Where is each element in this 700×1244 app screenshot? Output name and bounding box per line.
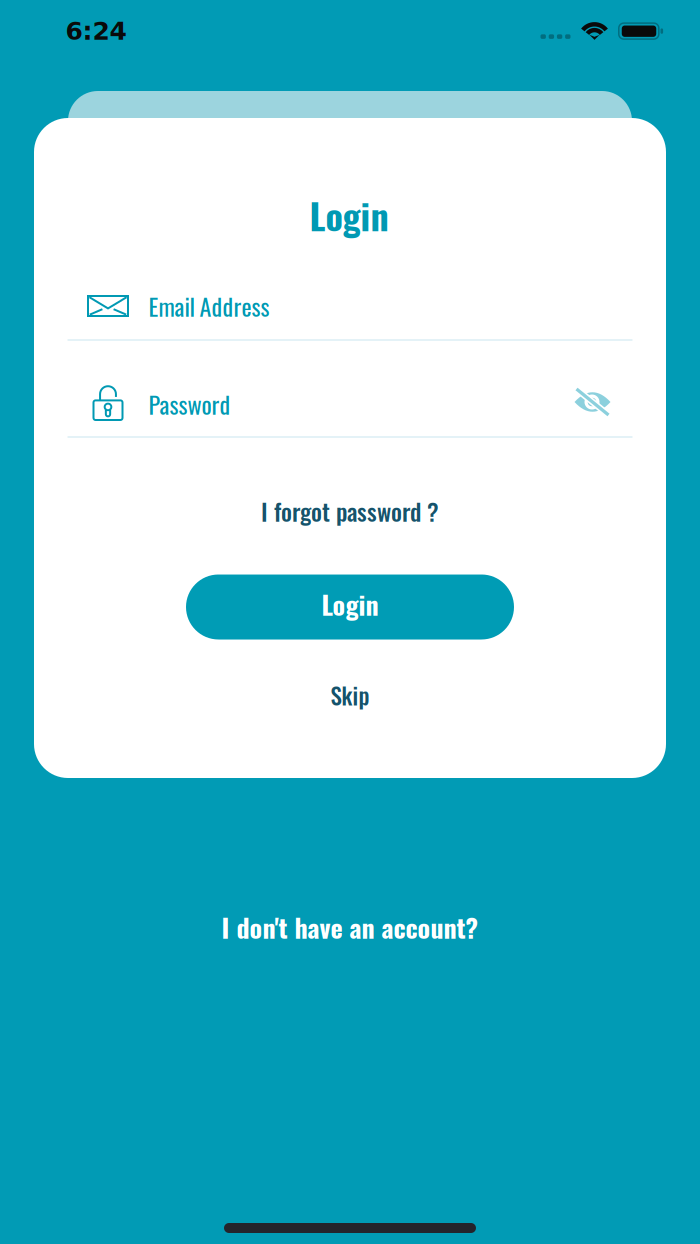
button[interactable]: Email Address — [67, 284, 632, 328]
button[interactable]: Show password — [564, 376, 620, 428]
button[interactable]: Skip — [285, 674, 415, 716]
button[interactable]: Login — [186, 574, 514, 639]
staticText: 6:24 — [65, 16, 126, 45]
button[interactable]: Password — [67, 376, 564, 428]
staticText: Login — [309, 188, 388, 242]
staticText: Login — [321, 585, 378, 623]
staticText: I forgot password ? — [261, 493, 439, 529]
staticText: Email Address — [148, 288, 269, 324]
staticText: I don't have an account? — [221, 908, 478, 946]
staticText: Password — [148, 386, 230, 422]
button[interactable]: I forgot password ? — [210, 490, 490, 532]
staticText: Skip — [330, 678, 369, 712]
button[interactable]: I don't have an account? — [150, 904, 550, 950]
